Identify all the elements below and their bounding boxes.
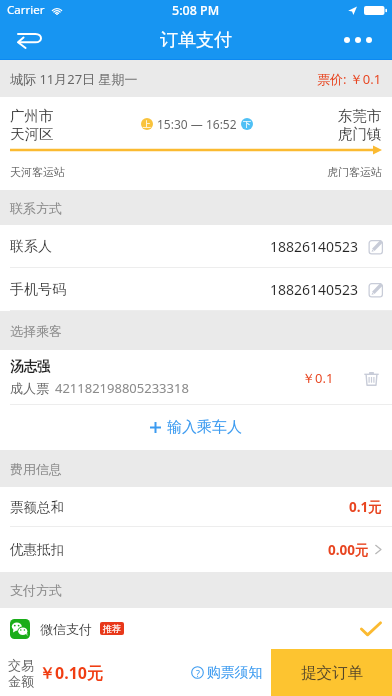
button[interactable]: Back: [0, 20, 58, 60]
staticText: 优惠抵扣: [10, 541, 64, 558]
button[interactable]: 输入乘车人: [0, 405, 392, 450]
staticText: 联系方式: [10, 200, 62, 216]
staticText: 金额: [8, 673, 34, 689]
button[interactable]: More options: [334, 20, 392, 60]
staticText: 虎门客运站: [327, 165, 382, 179]
staticText: 0.1元: [349, 498, 382, 516]
staticText: 虎门镇: [338, 125, 382, 143]
staticText: 421182198805233318: [55, 379, 189, 397]
staticText: 票价: ￥0.1: [317, 70, 382, 88]
staticText: 输入乘车人: [167, 418, 242, 437]
button[interactable]: ?: [186, 656, 268, 689]
button[interactable]: 联系人: [0, 225, 392, 268]
button[interactable]: 票额总和: [0, 487, 392, 527]
staticText: 微信支付: [40, 621, 92, 637]
staticText: 下: [243, 119, 251, 129]
button[interactable]: 提交订单: [271, 649, 392, 696]
button[interactable]: 手机号码: [0, 268, 392, 311]
staticText: 18826140523: [270, 280, 359, 299]
staticText: 18826140523: [270, 237, 359, 256]
staticText: 票额总和: [10, 499, 64, 516]
button[interactable]: 优惠抵扣: [0, 527, 392, 572]
staticText: 支付方式: [10, 582, 62, 598]
staticText: Carrier: [7, 2, 45, 18]
staticText: ￥0.1: [302, 369, 334, 387]
staticText: 费用信息: [10, 461, 62, 477]
staticText: 15:30 — 16:52: [157, 116, 237, 132]
staticText: 汤志强: [10, 358, 51, 375]
staticText: 手机号码: [10, 281, 66, 299]
staticText: 选择乘客: [10, 323, 62, 339]
staticText: ?: [196, 667, 200, 679]
staticText: 0.00元: [328, 541, 369, 559]
staticText: 城际 11月27日 星期一: [10, 70, 138, 88]
staticText: 天河区: [10, 125, 54, 143]
staticText: 成人票: [10, 380, 49, 396]
staticText: 天河客运站: [10, 165, 65, 179]
staticText: 推荐: [103, 623, 121, 634]
staticText: 联系人: [10, 238, 52, 256]
staticText: 上: [143, 119, 151, 129]
staticText: ￥0.10元: [39, 662, 103, 684]
staticText: 提交订单: [301, 663, 363, 683]
staticText: 订单支付: [160, 29, 232, 52]
button[interactable]: Delete passenger: [360, 367, 382, 389]
staticText: 东莞市: [338, 107, 382, 125]
staticText: 交易: [8, 657, 34, 673]
button[interactable]: 微信支付: [0, 608, 392, 649]
staticText: 5:08 PM: [172, 2, 220, 19]
staticText: 广州市: [10, 107, 54, 125]
staticText: 购票须知: [207, 664, 263, 681]
